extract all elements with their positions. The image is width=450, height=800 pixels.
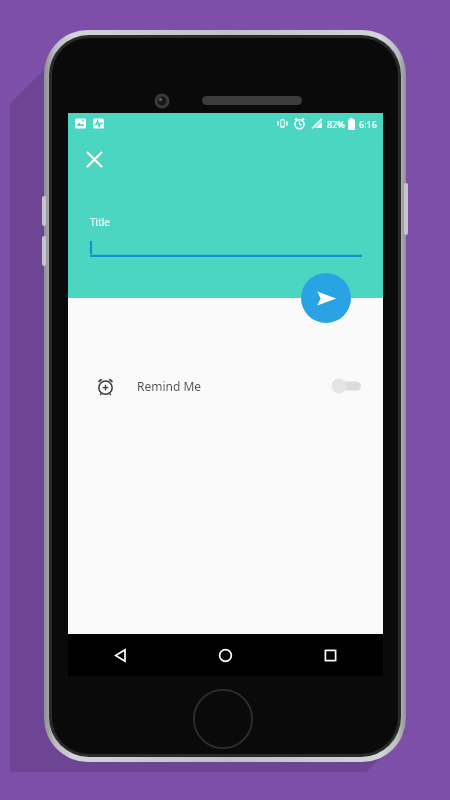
staticText: 82%	[327, 118, 345, 130]
staticText: Remind Me	[137, 378, 202, 394]
button[interactable]: Close	[74, 139, 114, 179]
button[interactable]: Remind Me toggle	[331, 378, 361, 394]
button[interactable]: Send	[301, 273, 351, 323]
staticText: Title	[90, 215, 110, 229]
staticText: 6:16	[359, 118, 377, 130]
button[interactable]: Title	[90, 215, 362, 257]
button[interactable]: Back	[68, 634, 173, 676]
button[interactable]: Home	[173, 634, 278, 676]
button[interactable]: Recent apps	[278, 634, 383, 676]
button[interactable]: Remind Me	[68, 362, 383, 410]
